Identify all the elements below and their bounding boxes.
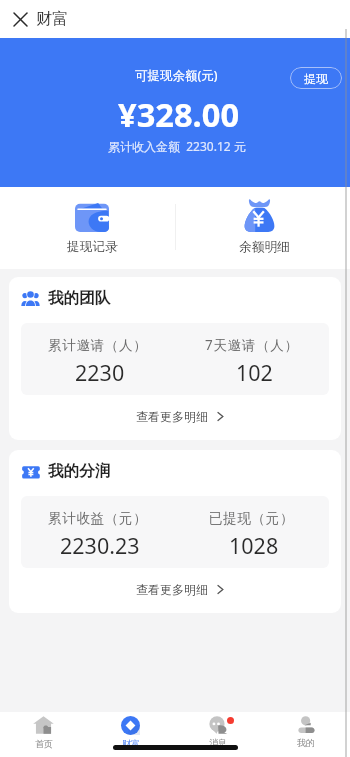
staticText: 我的分润 <box>48 461 111 481</box>
button[interactable]: 余额明细 <box>178 187 350 269</box>
staticText: 我的团队 <box>48 288 111 308</box>
button[interactable]: 提现记录 <box>6 187 178 269</box>
staticText: 1028 <box>229 531 279 560</box>
button[interactable]: 提现 <box>290 67 342 89</box>
staticText: 财富 <box>36 9 68 29</box>
staticText: 累计收益（元） <box>48 510 148 527</box>
staticText: 2230.23 <box>60 531 140 560</box>
staticText: 我的 <box>297 737 315 748</box>
button[interactable]: 财富 <box>87 712 174 752</box>
staticText: 查看更多明细 <box>136 582 208 597</box>
staticText: 提现 <box>304 71 328 86</box>
staticText: 102 <box>236 358 273 387</box>
staticText: 2230 <box>75 358 125 387</box>
staticText: ¥328.00 <box>118 92 240 136</box>
button[interactable]: 查看更多明细 <box>9 395 341 440</box>
staticText: 消息 <box>209 737 227 748</box>
staticText: 余额明细 <box>239 239 290 255</box>
button[interactable]: 消息 <box>174 712 262 752</box>
staticText: 财富 <box>122 738 140 749</box>
staticText: 可提现余额(元) <box>135 67 218 84</box>
staticText: 7天邀请（人） <box>205 336 299 354</box>
staticText: 首页 <box>35 738 53 749</box>
staticText: 累计邀请（人） <box>48 337 148 354</box>
button[interactable]: 我的 <box>262 712 350 752</box>
staticText: 累计收入金额 2230.12 元 <box>108 138 246 154</box>
staticText: 查看更多明细 <box>136 409 208 424</box>
button[interactable]: 查看更多明细 <box>9 568 341 613</box>
button[interactable]: Close <box>8 7 32 31</box>
staticText: 提现记录 <box>67 239 118 255</box>
button[interactable]: 首页 <box>0 712 87 752</box>
staticText: 已提现（元） <box>209 510 295 527</box>
